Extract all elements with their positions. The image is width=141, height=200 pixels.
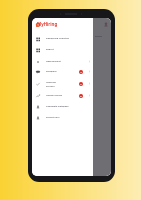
button[interactable]: Feedback — [32, 66, 93, 77]
button[interactable]: Approval Process — [32, 78, 93, 89]
button[interactable]: Report — [32, 44, 93, 55]
button[interactable]: Project Pool — [32, 112, 93, 123]
staticText: Report — [46, 48, 54, 51]
staticText: Dashboard Analytics — [46, 37, 69, 40]
button[interactable]: New Request — [32, 56, 93, 67]
button[interactable]: MyHiring — [36, 21, 61, 28]
staticText: Approval Process — [46, 81, 56, 87]
staticText: MyHiring — [37, 21, 58, 27]
staticText: 2 — [80, 83, 82, 86]
button[interactable]: Hiring Process — [32, 90, 93, 101]
staticText: 4 — [80, 71, 82, 74]
button[interactable] — [93, 18, 111, 176]
staticText: Candidate Database — [46, 105, 69, 108]
button[interactable]: Profile — [103, 22, 109, 28]
staticText: Hiring Process — [46, 94, 63, 97]
button[interactable]: Dashboard Analytics — [32, 33, 93, 44]
staticText: Project Pool — [46, 116, 60, 119]
staticText: New Request — [46, 60, 61, 63]
button[interactable]: Candidate Database — [32, 101, 93, 112]
staticText: Feedback — [46, 70, 57, 73]
staticText: 8 — [80, 95, 82, 98]
